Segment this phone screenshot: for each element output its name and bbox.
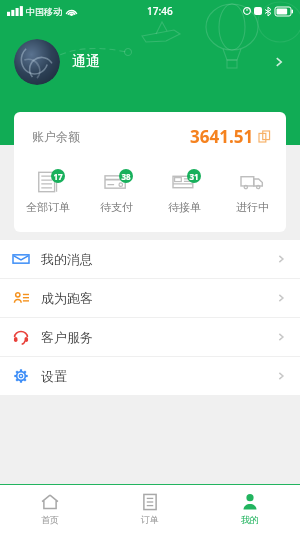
button[interactable]: 通通 bbox=[0, 22, 300, 102]
button[interactable]: 首页 bbox=[0, 485, 100, 533]
staticText: 订单 bbox=[141, 514, 159, 525]
button[interactable]: 我的消息 bbox=[0, 240, 300, 278]
button[interactable]: 17 bbox=[14, 164, 82, 226]
staticText: 中国移动 bbox=[26, 6, 62, 17]
staticText: 31 bbox=[189, 171, 199, 182]
button[interactable]: 38 bbox=[82, 164, 150, 226]
button[interactable]: 客户服务 bbox=[0, 318, 300, 356]
staticText: 我的消息 bbox=[41, 251, 93, 267]
staticText: 3641.51 bbox=[190, 125, 254, 148]
button[interactable]: 成为跑客 bbox=[0, 279, 300, 317]
staticText: 通通 bbox=[72, 53, 100, 71]
staticText: 我的 bbox=[241, 514, 259, 525]
button[interactable]: 设置 bbox=[0, 357, 300, 395]
button[interactable]: 31 bbox=[150, 164, 218, 226]
staticText: 设置 bbox=[41, 368, 67, 384]
other: Copy balance bbox=[259, 131, 270, 142]
staticText: 待支付 bbox=[100, 200, 133, 214]
button[interactable]: 我的 bbox=[200, 485, 300, 533]
button[interactable]: 进行中 bbox=[218, 164, 286, 226]
staticText: 38 bbox=[121, 171, 131, 182]
staticText: 成为跑客 bbox=[41, 290, 93, 306]
staticText: 首页 bbox=[41, 514, 59, 525]
staticText: 账户余额 bbox=[32, 129, 80, 144]
staticText: 17 bbox=[53, 171, 63, 182]
staticText: 客户服务 bbox=[41, 329, 93, 345]
staticText: 待接单 bbox=[168, 200, 201, 214]
staticText: 进行中 bbox=[236, 200, 269, 214]
button[interactable]: 账户余额 bbox=[14, 112, 286, 160]
staticText: 全部订单 bbox=[26, 200, 70, 214]
button[interactable]: 订单 bbox=[100, 485, 200, 533]
staticText: 17:46 bbox=[147, 4, 173, 18]
